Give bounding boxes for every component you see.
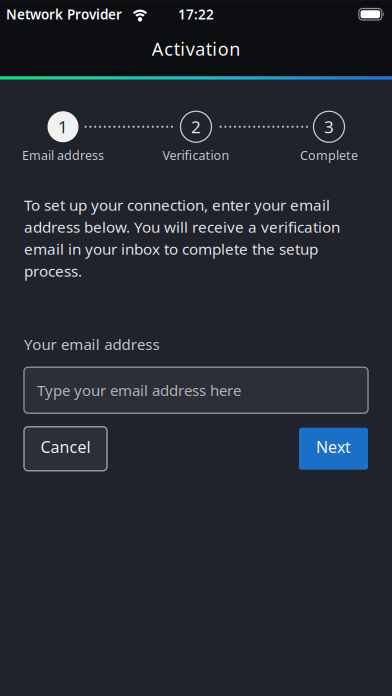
staticText: To set up your connection, enter your em… <box>24 195 340 281</box>
staticText: 1 <box>58 115 68 138</box>
staticText: Cancel <box>40 436 90 457</box>
button[interactable]: Step 1: Email address <box>47 111 78 142</box>
staticText: Next <box>316 436 351 457</box>
staticText: Network Provider <box>6 5 122 23</box>
staticText: 3 <box>324 115 334 138</box>
staticText: Activation <box>152 37 240 61</box>
button[interactable]: Cancel <box>24 427 107 471</box>
button[interactable]: Next <box>299 428 368 470</box>
staticText: Email address <box>22 147 104 164</box>
staticText: 2 <box>191 115 201 138</box>
staticText: Your email address <box>24 334 159 354</box>
button[interactable]: Type your email address here <box>24 367 368 413</box>
button[interactable]: Step 2: Verification <box>180 111 211 142</box>
staticText: Complete <box>300 147 358 164</box>
staticText: Verification <box>162 147 229 164</box>
staticText: 17:22 <box>178 5 214 23</box>
staticText: Type your email address here <box>37 380 241 400</box>
button[interactable]: Step 3: Complete <box>313 111 344 142</box>
